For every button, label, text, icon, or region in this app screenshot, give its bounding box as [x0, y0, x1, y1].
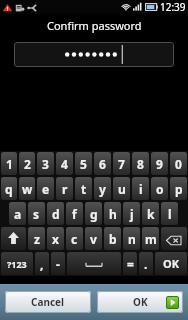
- button[interactable]: [14, 42, 174, 67]
- staticText: =: [127, 256, 134, 272]
- button[interactable]: k: [142, 202, 159, 225]
- button[interactable]: l: [161, 202, 178, 225]
- button[interactable]: 3: [37, 152, 54, 175]
- staticText: u: [118, 181, 126, 197]
- button[interactable]: 8: [132, 152, 149, 175]
- staticText: j: [130, 206, 134, 222]
- button[interactable]: f: [66, 202, 83, 225]
- staticText: -: [56, 256, 60, 272]
- staticText: t: [81, 181, 87, 197]
- staticText: 9: [156, 156, 163, 172]
- button[interactable]: b: [104, 227, 121, 250]
- button[interactable]: 2: [19, 152, 35, 175]
- staticText: y: [99, 181, 106, 197]
- button[interactable]: p: [170, 177, 187, 200]
- button[interactable]: ?123: [1, 252, 33, 275]
- staticText: g: [90, 206, 98, 222]
- staticText: f: [72, 206, 77, 222]
- staticText: q: [5, 181, 13, 197]
- button[interactable]: a: [9, 202, 26, 225]
- button[interactable]: x: [47, 227, 64, 250]
- staticText: OK: [163, 256, 180, 271]
- staticText: 1: [6, 156, 13, 172]
- button[interactable]: 7: [113, 152, 130, 175]
- button[interactable]: OK: [155, 252, 187, 275]
- staticText: p: [175, 181, 183, 197]
- staticText: n: [128, 231, 136, 247]
- staticText: l: [168, 206, 172, 222]
- staticText: 8: [137, 156, 144, 172]
- button[interactable]: z: [28, 227, 45, 250]
- staticText: h: [109, 206, 117, 222]
- button[interactable]: i: [132, 177, 149, 200]
- button[interactable]: 6: [94, 152, 111, 175]
- button[interactable]: v: [85, 227, 102, 250]
- staticText: o: [156, 181, 164, 197]
- staticText: k: [147, 206, 155, 222]
- button[interactable]: u: [113, 177, 130, 200]
- staticText: 3: [42, 156, 49, 172]
- staticText: 5: [80, 156, 87, 172]
- button[interactable]: j: [123, 202, 140, 225]
- staticText: 6: [99, 156, 106, 172]
- staticText: r: [62, 181, 68, 197]
- staticText: ,: [40, 256, 44, 272]
- button[interactable]: h: [104, 202, 121, 225]
- button[interactable]: g: [85, 202, 102, 225]
- staticText: Cancel: [31, 295, 65, 309]
- button[interactable]: ,: [35, 252, 49, 275]
- button[interactable]: Shift: [1, 227, 26, 250]
- button[interactable]: Cancel: [5, 291, 91, 313]
- button[interactable]: r: [56, 177, 73, 200]
- staticText: 7: [118, 156, 125, 172]
- staticText: 0: [175, 156, 182, 172]
- staticText: m: [145, 231, 157, 247]
- button[interactable]: o: [151, 177, 168, 200]
- staticText: OK: [133, 295, 148, 309]
- button[interactable]: c: [66, 227, 83, 250]
- other: Confirm: [166, 296, 179, 309]
- staticText: z: [34, 231, 40, 247]
- staticText: s: [33, 206, 40, 222]
- button[interactable]: t: [75, 177, 92, 200]
- staticText: b: [109, 231, 117, 247]
- button[interactable]: 9: [151, 152, 168, 175]
- button[interactable]: q: [1, 177, 17, 200]
- staticText: e: [42, 181, 50, 197]
- staticText: v: [90, 231, 97, 247]
- button[interactable]: m: [142, 227, 159, 250]
- button[interactable]: -: [51, 252, 65, 275]
- button[interactable]: OK: [97, 291, 183, 313]
- button[interactable]: e: [37, 177, 54, 200]
- button[interactable]: .: [139, 252, 153, 275]
- button[interactable]: y: [94, 177, 111, 200]
- button[interactable]: Space: [67, 252, 121, 275]
- staticText: 2: [24, 156, 31, 172]
- staticText: x: [52, 231, 59, 247]
- button[interactable]: 5: [75, 152, 92, 175]
- button[interactable]: 4: [56, 152, 73, 175]
- staticText: w: [22, 181, 33, 197]
- staticText: 4: [61, 156, 68, 172]
- button[interactable]: s: [28, 202, 45, 225]
- button[interactable]: w: [19, 177, 35, 200]
- staticText: a: [14, 206, 22, 222]
- staticText: 12:39: [160, 0, 186, 14]
- staticText: i: [139, 181, 143, 197]
- staticText: c: [71, 231, 78, 247]
- button[interactable]: =: [123, 252, 137, 275]
- staticText: Confirm password: [47, 18, 142, 33]
- staticText: .: [144, 256, 148, 272]
- staticText: ?123: [7, 258, 27, 270]
- button[interactable]: d: [47, 202, 64, 225]
- button[interactable]: Delete: [161, 227, 187, 250]
- button[interactable]: n: [123, 227, 140, 250]
- button[interactable]: 1: [1, 152, 17, 175]
- staticText: d: [52, 206, 60, 222]
- button[interactable]: 0: [170, 152, 187, 175]
